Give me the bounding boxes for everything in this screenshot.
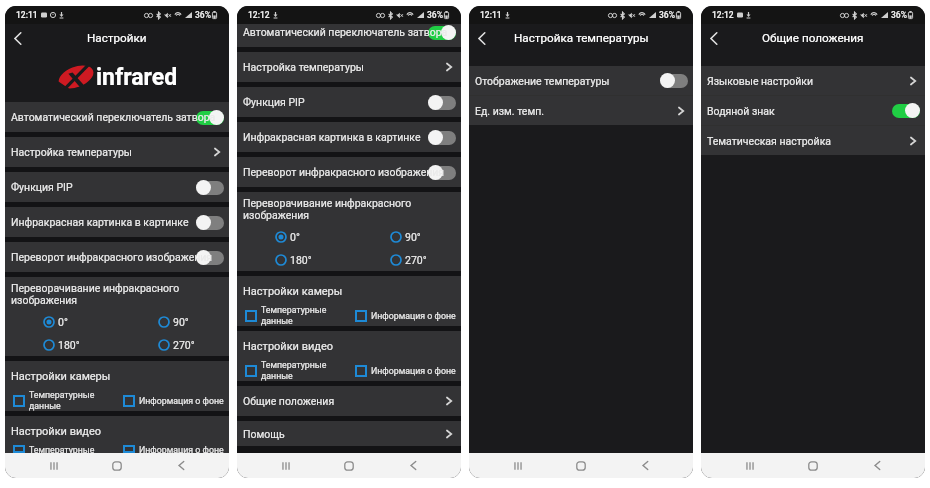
button[interactable]: Toggle — [196, 250, 224, 265]
staticText: 36% — [659, 10, 675, 20]
button[interactable]: Recents — [271, 453, 301, 478]
button[interactable]: Общие положения — [237, 386, 461, 416]
button[interactable]: 90° — [117, 310, 229, 333]
button[interactable]: Toggle — [428, 165, 456, 180]
button[interactable]: Информация о фоне — [355, 305, 461, 326]
staticText: infrared — [96, 64, 178, 91]
button[interactable]: 180° — [237, 248, 349, 271]
button[interactable]: Toggle — [892, 103, 920, 118]
button[interactable]: Toggle — [5, 242, 229, 272]
staticText: Инфракрасная картинка в картинке — [11, 216, 189, 228]
staticText: Переворот инфракрасного изображения — [11, 251, 213, 263]
staticText: 12:12 — [712, 10, 734, 20]
button[interactable]: Настройка температуры — [237, 52, 461, 82]
staticText: Тематическая настройка — [707, 135, 832, 147]
button[interactable]: Back — [398, 453, 428, 478]
staticText: Инфракрасная картинка в картинке — [243, 131, 421, 143]
button[interactable]: Температурные данные — [245, 305, 349, 326]
staticText: Ед. изм. темп. — [475, 105, 545, 117]
button[interactable]: Тематическая настройка — [701, 126, 925, 155]
button[interactable]: 0° — [237, 225, 349, 248]
staticText: Переворачивание инфракрасного изображени… — [243, 197, 412, 222]
button[interactable]: Toggle — [5, 102, 229, 132]
button[interactable]: Toggle — [196, 180, 224, 195]
staticText: Настройки камеры — [11, 370, 111, 383]
staticText: 0° — [290, 231, 300, 243]
staticText: Настройка температуры — [514, 31, 649, 45]
button[interactable]: 270° — [349, 248, 461, 271]
staticText: Автоматический переключатель затвора — [243, 26, 448, 38]
staticText: Функция PIP — [243, 96, 305, 108]
staticText: Водяной знак — [707, 105, 775, 117]
button[interactable]: Back — [471, 27, 493, 49]
button[interactable]: Recents — [735, 453, 765, 478]
staticText: Температурные данные — [29, 445, 95, 453]
staticText: Настройка температуры — [243, 61, 364, 73]
staticText: Отображение температуры — [475, 75, 610, 87]
button[interactable]: Информация о фоне — [123, 390, 229, 411]
staticText: Информация о фоне — [371, 311, 456, 321]
staticText: Настройка температуры — [11, 146, 132, 158]
staticText: Настройки видео — [11, 425, 102, 438]
staticText: 0° — [58, 316, 68, 328]
button[interactable]: Home — [798, 453, 828, 478]
button[interactable]: Toggle — [428, 25, 456, 40]
button[interactable]: Toggle — [701, 96, 925, 125]
button[interactable]: Температурные данные — [245, 360, 349, 381]
button[interactable]: Toggle — [5, 207, 229, 237]
button[interactable]: Home — [102, 453, 132, 478]
button[interactable]: Back — [630, 453, 660, 478]
button[interactable]: Home — [566, 453, 596, 478]
staticText: 12:11 — [480, 10, 502, 20]
button[interactable]: Recents — [503, 453, 533, 478]
button[interactable]: Home — [334, 453, 364, 478]
button[interactable]: Toggle — [237, 87, 461, 117]
button[interactable]: Языковые настройки — [701, 66, 925, 95]
staticText: Информация о фоне — [139, 396, 224, 406]
staticText: Настройки камеры — [243, 285, 343, 298]
staticText: 180° — [290, 254, 312, 266]
button[interactable]: Back — [703, 27, 725, 49]
staticText: Помощь — [243, 428, 285, 440]
button[interactable]: Toggle — [5, 172, 229, 202]
button[interactable]: Toggle — [196, 215, 224, 230]
button[interactable]: Toggle — [428, 130, 456, 145]
button[interactable]: Toggle — [237, 24, 461, 47]
button[interactable]: Настройка температуры — [5, 137, 229, 167]
button[interactable]: Температурные данные — [13, 445, 117, 453]
button[interactable]: Back — [7, 27, 29, 49]
button[interactable]: Ед. изм. темп. — [469, 96, 693, 125]
button[interactable]: Toggle — [469, 66, 693, 95]
button[interactable]: Toggle — [237, 157, 461, 187]
staticText: Переворот инфракрасного изображения — [243, 166, 445, 178]
button[interactable]: Toggle — [237, 122, 461, 152]
staticText: 270° — [173, 339, 195, 351]
button[interactable]: Информация о фоне — [123, 445, 229, 453]
staticText: 180° — [58, 339, 80, 351]
staticText: 12:12 — [248, 10, 270, 20]
staticText: 36% — [891, 10, 907, 20]
button[interactable]: Помощь — [237, 421, 461, 446]
button[interactable]: Toggle — [196, 110, 224, 125]
staticText: 36% — [195, 10, 211, 20]
staticText: Температурные данные — [261, 305, 327, 326]
button[interactable]: 0° — [5, 310, 117, 333]
button[interactable]: Toggle — [660, 73, 688, 88]
button[interactable]: 180° — [5, 333, 117, 356]
staticText: Температурные данные — [261, 360, 327, 381]
button[interactable]: Recents — [39, 453, 69, 478]
staticText: 90° — [405, 231, 421, 243]
button[interactable]: Информация о фоне — [355, 360, 461, 381]
staticText: 12:11 — [16, 10, 38, 20]
staticText: 36% — [427, 10, 443, 20]
staticText: Автоматический переключатель затвора — [11, 111, 216, 123]
button[interactable]: 270° — [117, 333, 229, 356]
button[interactable]: Toggle — [428, 95, 456, 110]
staticText: Информация о фоне — [371, 366, 456, 376]
staticText: Настройки видео — [243, 340, 334, 353]
staticText: Переворачивание инфракрасного изображени… — [11, 282, 180, 307]
button[interactable]: Back — [862, 453, 892, 478]
button[interactable]: Температурные данные — [13, 390, 117, 411]
button[interactable]: Back — [166, 453, 196, 478]
button[interactable]: 90° — [349, 225, 461, 248]
